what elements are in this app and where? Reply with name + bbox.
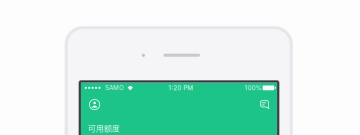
- staticText: 1:20 PM: [168, 84, 193, 92]
- button[interactable]: Messages: [252, 93, 278, 116]
- staticText: 可用额度: [88, 122, 120, 134]
- staticText: SAMO: [105, 84, 124, 91]
- button[interactable]: Account: [82, 93, 108, 116]
- staticText: 100%: [244, 84, 261, 92]
